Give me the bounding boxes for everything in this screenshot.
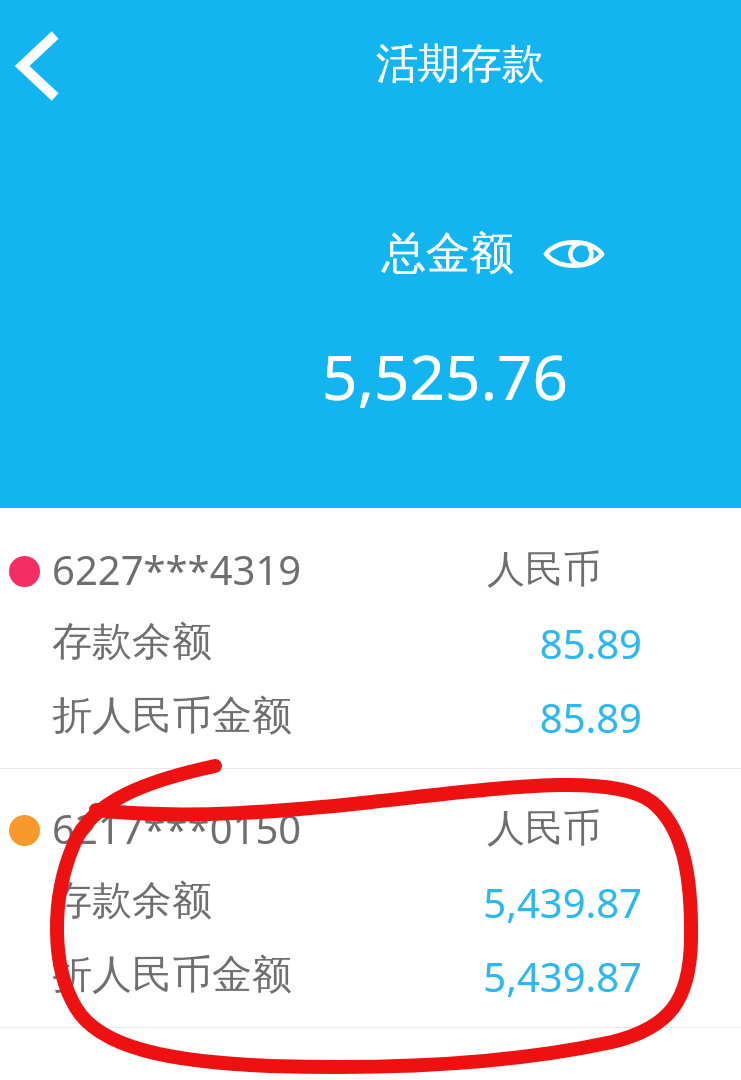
button[interactable]: Back bbox=[0, 18, 76, 114]
staticText: 5,439.87 bbox=[300, 875, 642, 929]
staticText: 存款余额 bbox=[52, 875, 212, 925]
staticText: 5,439.87 bbox=[300, 949, 642, 1003]
staticText: 折人民币金额 bbox=[52, 690, 292, 740]
staticText: 折人民币金额 bbox=[52, 949, 292, 999]
staticText: 85.89 bbox=[300, 690, 642, 744]
staticText: 活期存款 bbox=[376, 38, 544, 91]
button[interactable]: 6227***4319 bbox=[0, 508, 741, 768]
staticText: 6217***0150 bbox=[52, 801, 302, 855]
staticText: 人民币 bbox=[487, 545, 601, 593]
staticText: 存款余额 bbox=[52, 616, 212, 666]
staticText: 总金额 bbox=[382, 226, 514, 281]
staticText: 85.89 bbox=[300, 616, 642, 670]
staticText: 日光新闻 bbox=[640, 1018, 741, 1053]
button[interactable]: 6217***0150 bbox=[0, 769, 741, 1027]
staticText: 人民币 bbox=[487, 804, 601, 852]
button[interactable]: Toggle amount visibility bbox=[542, 229, 606, 279]
staticText: 6227***4319 bbox=[52, 542, 302, 596]
staticText: 5,525.76 bbox=[322, 334, 569, 418]
